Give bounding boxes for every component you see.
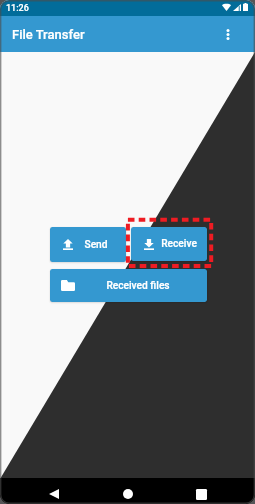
button[interactable]: Home bbox=[113, 478, 143, 504]
button[interactable]: Send bbox=[50, 227, 126, 262]
button[interactable]: Receive bbox=[131, 227, 207, 261]
staticText: Received files bbox=[106, 280, 170, 292]
staticText: Receive bbox=[161, 238, 197, 250]
staticText: 11:26 bbox=[6, 3, 29, 14]
button[interactable]: Recents bbox=[186, 478, 216, 504]
staticText: File Transfer bbox=[12, 27, 85, 42]
button[interactable]: Back bbox=[39, 478, 69, 504]
button[interactable]: More options bbox=[214, 20, 242, 48]
button[interactable]: Received files bbox=[50, 269, 207, 302]
staticText: Send bbox=[84, 239, 108, 251]
